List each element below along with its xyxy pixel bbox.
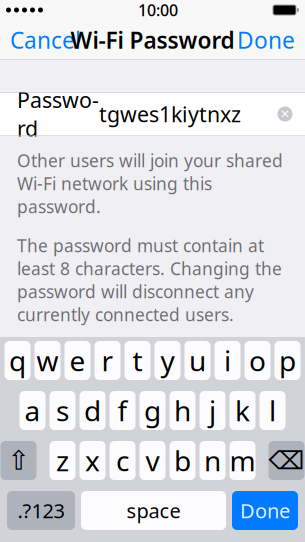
button[interactable]: t — [124, 341, 150, 380]
button[interactable]: s — [49, 391, 75, 430]
staticText: k — [235, 392, 250, 429]
button[interactable]: o — [244, 341, 270, 380]
staticText: g — [144, 392, 161, 429]
staticText: o — [249, 342, 266, 379]
button[interactable]: h — [169, 391, 195, 430]
staticText: Done — [240, 497, 290, 524]
staticText: Other users will join your shared Wi-Fi … — [17, 149, 283, 218]
button[interactable]: Done — [229, 16, 303, 64]
button[interactable]: p — [274, 341, 300, 380]
button[interactable]: f — [109, 391, 135, 430]
staticText: d — [84, 392, 101, 429]
button[interactable]: Delete — [268, 441, 304, 480]
staticText: a — [24, 392, 40, 429]
button[interactable]: Clear text — [269, 98, 301, 130]
staticText: ⇧ — [7, 445, 29, 476]
staticText: c — [116, 442, 129, 479]
staticText: w — [36, 342, 58, 379]
staticText: ⌫ — [268, 446, 304, 475]
staticText: n — [204, 442, 221, 479]
button[interactable]: z — [49, 441, 75, 480]
staticText: tgwes1kiytnxz — [99, 100, 241, 128]
button[interactable]: u — [184, 341, 210, 380]
staticText: v — [145, 442, 159, 479]
staticText: Done — [237, 25, 295, 55]
staticText: .?123 — [17, 497, 64, 524]
button[interactable]: i — [214, 341, 240, 380]
staticText: x — [85, 442, 100, 479]
staticText: j — [209, 392, 216, 429]
staticText: s — [56, 392, 69, 429]
button[interactable]: l — [259, 391, 285, 430]
button[interactable]: m — [229, 441, 255, 480]
staticText: q — [9, 342, 26, 379]
button[interactable]: r — [94, 341, 120, 380]
button[interactable]: k — [229, 391, 255, 430]
staticText: z — [56, 442, 69, 479]
staticText: t — [132, 342, 142, 379]
staticText: b — [174, 442, 191, 479]
button[interactable]: n — [199, 441, 225, 480]
button[interactable]: d — [79, 391, 105, 430]
button[interactable]: Done — [232, 491, 298, 530]
staticText: The password must contain at least 8 cha… — [17, 234, 282, 326]
button[interactable]: j — [199, 391, 225, 430]
button[interactable]: q — [4, 341, 30, 380]
staticText: y — [160, 342, 174, 379]
staticText: i — [224, 342, 231, 379]
staticText: e — [69, 342, 85, 379]
button[interactable]: a — [19, 391, 45, 430]
staticText: r — [101, 342, 113, 379]
button[interactable]: Shift — [0, 441, 36, 480]
staticText: h — [174, 392, 191, 429]
staticText: space — [126, 497, 180, 524]
button[interactable]: g — [139, 391, 165, 430]
staticText: m — [229, 442, 255, 479]
button[interactable]: w — [34, 341, 60, 380]
button[interactable]: space — [81, 491, 226, 530]
staticText: p — [279, 342, 296, 379]
button[interactable]: v — [139, 441, 165, 480]
button[interactable]: b — [169, 441, 195, 480]
staticText: ✕ — [280, 107, 290, 121]
button[interactable]: Cancel — [2, 16, 89, 64]
staticText: f — [117, 392, 127, 429]
button[interactable]: c — [109, 441, 135, 480]
staticText: Cancel — [10, 25, 81, 55]
staticText: Wi-Fi Password — [70, 25, 234, 55]
button[interactable]: x — [79, 441, 105, 480]
staticText: u — [189, 342, 206, 379]
staticText: 10:00 — [138, 0, 178, 21]
button[interactable]: e — [64, 341, 90, 380]
staticText: l — [269, 392, 276, 429]
button[interactable]: y — [154, 341, 180, 380]
staticText: Password — [17, 86, 99, 142]
button[interactable]: .?123 — [7, 491, 75, 530]
